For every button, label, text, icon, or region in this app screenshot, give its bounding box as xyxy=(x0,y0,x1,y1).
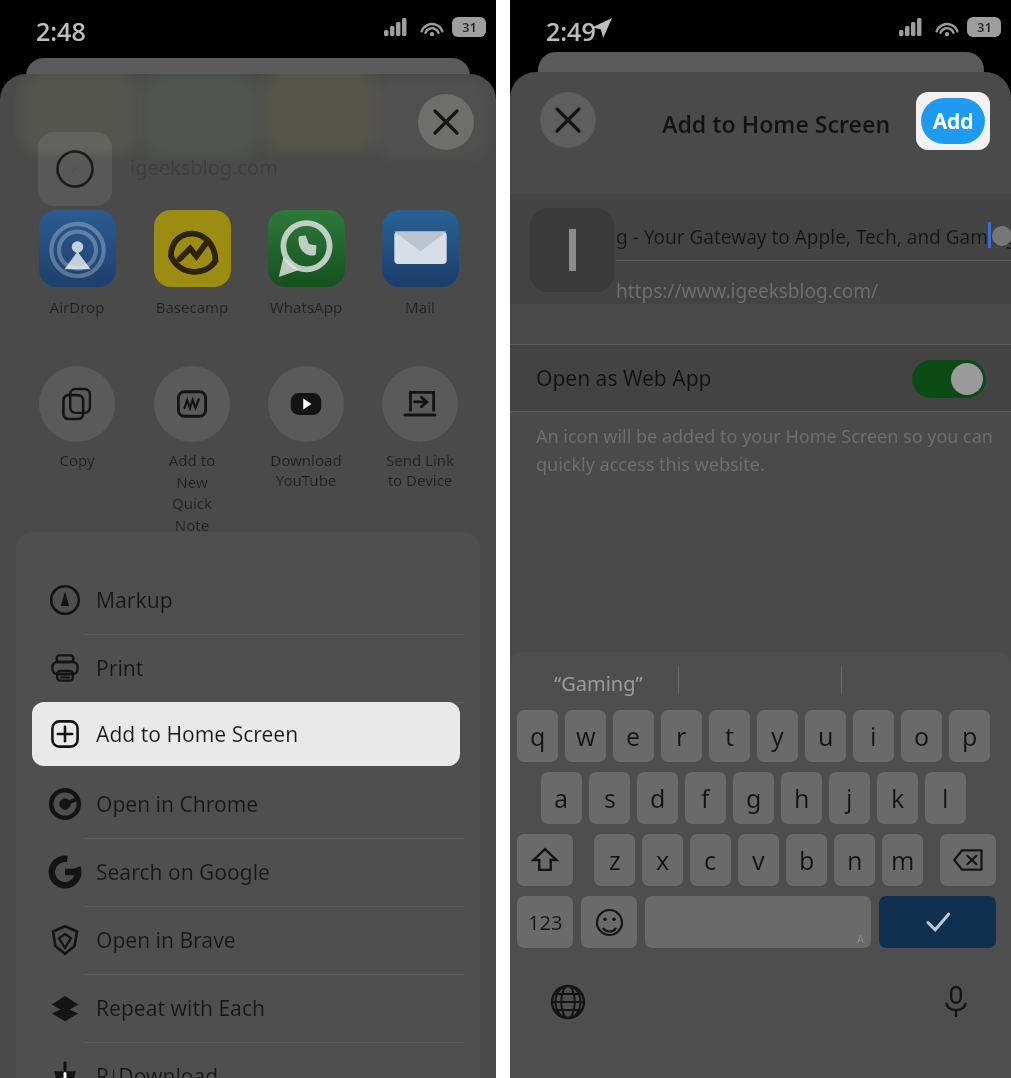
staticText: igeeksblog.com xyxy=(130,154,278,181)
staticText: i xyxy=(870,719,877,753)
staticText: https://www.igeeksblog.com/ xyxy=(616,278,879,304)
staticText: r xyxy=(676,719,687,753)
button[interactable]: Markup xyxy=(16,566,480,634)
button[interactable]: Add to Home Screen xyxy=(32,702,460,766)
button[interactable]: Send Link xyxy=(381,366,459,490)
button[interactable]: z xyxy=(594,834,635,886)
staticText: t xyxy=(725,719,735,753)
button[interactable]: Open as Web App xyxy=(510,345,1011,411)
button[interactable]: Search on Google xyxy=(16,838,480,906)
staticText: Send Link xyxy=(381,450,459,470)
button[interactable]: o xyxy=(901,710,942,762)
button[interactable]: Open in Brave xyxy=(16,906,480,974)
staticText: q xyxy=(530,719,546,753)
button[interactable]: Basecamp xyxy=(153,210,231,317)
button[interactable]: AirDrop xyxy=(38,210,116,317)
button[interactable]: l xyxy=(925,772,966,824)
staticText: Search on Google xyxy=(96,858,270,887)
button[interactable]: v xyxy=(738,834,779,886)
staticText: R⤓Download xyxy=(96,1062,219,1078)
button[interactable]: h xyxy=(781,772,822,824)
button[interactable]: Backspace xyxy=(940,834,996,886)
button[interactable]: n xyxy=(834,834,875,886)
button[interactable]: Open in Chrome xyxy=(16,770,480,838)
staticText: Quick Note xyxy=(153,493,231,536)
button[interactable]: r xyxy=(661,710,702,762)
button[interactable]: u xyxy=(805,710,846,762)
button[interactable]: m xyxy=(882,834,923,886)
button[interactable]: Copy xyxy=(38,366,116,470)
button[interactable]: a xyxy=(541,772,582,824)
button[interactable]: p xyxy=(949,710,990,762)
staticText: Basecamp xyxy=(153,297,231,317)
staticText: l xyxy=(942,781,949,815)
button[interactable]: t xyxy=(709,710,750,762)
staticText: 123 xyxy=(528,909,563,936)
button[interactable]: Change keyboard xyxy=(548,982,588,1022)
staticText: x xyxy=(656,843,670,877)
staticText: AirDrop xyxy=(38,297,116,317)
staticText: “Gaming” xyxy=(554,670,643,697)
button[interactable]: Close xyxy=(418,94,474,150)
staticText: h xyxy=(794,781,810,815)
button[interactable]: j xyxy=(829,772,870,824)
button[interactable]: WhatsApp xyxy=(267,210,345,317)
button[interactable]: d xyxy=(637,772,678,824)
staticText: m xyxy=(891,843,915,877)
button[interactable]: b xyxy=(786,834,827,886)
staticText: Print xyxy=(96,654,144,683)
staticText: Add to Home Screen xyxy=(662,108,891,139)
button[interactable]: Go xyxy=(879,896,996,948)
button[interactable]: x xyxy=(642,834,683,886)
button[interactable]: f xyxy=(685,772,726,824)
button[interactable]: Emoji xyxy=(581,896,637,948)
staticText: d xyxy=(650,781,666,815)
staticText: Open in Chrome xyxy=(96,790,259,819)
button[interactable]: R⤓Download xyxy=(16,1042,480,1078)
staticText: e xyxy=(626,719,641,753)
staticText: k xyxy=(891,781,905,815)
button[interactable]: Dictate xyxy=(936,982,976,1022)
button[interactable]: q xyxy=(517,710,558,762)
staticText: c xyxy=(704,843,717,877)
button[interactable]: y xyxy=(757,710,798,762)
staticText: 2:49 xyxy=(546,14,596,48)
button[interactable]: k xyxy=(877,772,918,824)
staticText: YouTube xyxy=(267,470,345,490)
button[interactable]: Print xyxy=(16,634,480,702)
staticText: Mail xyxy=(381,297,459,317)
staticText: Add to Home Screen xyxy=(96,720,299,749)
staticText: quickly access this website. xyxy=(536,452,765,477)
staticText: w xyxy=(576,719,596,753)
button[interactable]: e xyxy=(613,710,654,762)
button[interactable]: Add xyxy=(916,92,990,150)
button[interactable]: Shift xyxy=(517,834,573,886)
staticText: Markup xyxy=(96,586,173,615)
button[interactable]: 123 xyxy=(517,896,573,948)
staticText: Add xyxy=(933,107,974,136)
button[interactable]: c xyxy=(690,834,731,886)
button[interactable]: g xyxy=(733,772,774,824)
staticText: Download xyxy=(267,450,345,470)
staticText: WhatsApp xyxy=(267,297,345,317)
staticText: b xyxy=(799,843,815,877)
button[interactable]: Open as Web App toggle xyxy=(912,360,986,398)
button[interactable]: Mail xyxy=(381,210,459,317)
staticText: y xyxy=(771,719,784,753)
button[interactable]: s xyxy=(589,772,630,824)
button[interactable]: Close xyxy=(540,92,596,148)
button[interactable]: Download xyxy=(267,366,345,490)
staticText: 31 xyxy=(462,18,477,36)
staticText: f xyxy=(701,781,710,815)
button[interactable]: Add to New xyxy=(153,366,231,536)
staticText: p xyxy=(962,719,978,753)
button[interactable]: Clear text xyxy=(992,226,1011,246)
button[interactable]: w xyxy=(565,710,606,762)
staticText: g - Your Gateway to Apple, Tech, and Gam… xyxy=(616,224,1011,250)
staticText: A xyxy=(857,931,865,946)
button[interactable]: Repeat with Each xyxy=(16,974,480,1042)
staticText: a xyxy=(554,781,569,815)
staticText: 2:48 xyxy=(36,14,86,48)
button[interactable]: i xyxy=(853,710,894,762)
